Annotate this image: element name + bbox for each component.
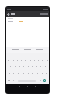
button[interactable] (30, 64, 34, 69)
button[interactable] (38, 64, 42, 69)
button[interactable] (43, 64, 47, 69)
button[interactable]: Enter (42, 78, 47, 83)
button[interactable] (23, 58, 27, 63)
button[interactable] (45, 58, 49, 63)
button[interactable]: Period (39, 78, 42, 83)
button[interactable] (35, 71, 39, 76)
button[interactable] (44, 71, 48, 76)
button[interactable]: Back (17, 84, 22, 89)
button[interactable] (30, 71, 34, 76)
button[interactable] (40, 71, 44, 76)
button[interactable]: Emoji (11, 78, 15, 83)
button[interactable] (21, 71, 25, 76)
button[interactable] (32, 58, 36, 63)
button[interactable] (16, 71, 20, 76)
button[interactable]: Home (25, 84, 30, 89)
button[interactable]: Symbols (7, 78, 11, 83)
button[interactable] (6, 58, 10, 63)
button[interactable] (21, 64, 25, 69)
button[interactable] (15, 58, 19, 63)
button[interactable] (26, 71, 30, 76)
button[interactable] (26, 64, 30, 69)
button[interactable]: Back (7, 13, 10, 16)
button[interactable] (11, 71, 15, 76)
button[interactable] (19, 58, 23, 63)
button[interactable] (11, 58, 15, 63)
button[interactable] (28, 58, 32, 63)
button[interactable] (8, 64, 12, 69)
button[interactable]: Space (15, 78, 39, 83)
button[interactable] (17, 64, 21, 69)
button[interactable] (13, 64, 17, 69)
button[interactable] (40, 58, 44, 63)
button[interactable] (7, 71, 11, 76)
button[interactable] (34, 64, 38, 69)
button[interactable]: Recents (33, 84, 38, 89)
button[interactable] (36, 58, 40, 63)
